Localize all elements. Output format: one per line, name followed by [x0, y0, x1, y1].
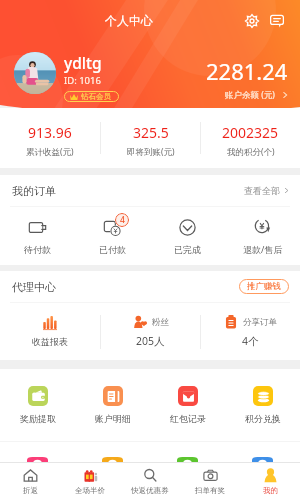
staticText: 即将到账(元)	[127, 146, 175, 158]
staticText: 折返	[23, 486, 38, 495]
button[interactable]: 推广赚钱	[247, 281, 281, 292]
staticText: 推广赚钱	[247, 281, 281, 292]
button[interactable]: 积分兑换	[225, 369, 300, 441]
button[interactable]: 4	[75, 207, 150, 265]
button[interactable]: More tools	[0, 442, 75, 464]
staticText: 扫单有奖	[195, 486, 225, 495]
staticText: 查看全部	[244, 185, 280, 196]
button[interactable]: 2281.24	[206, 56, 288, 101]
staticText: 代理中心	[12, 280, 56, 294]
button[interactable]: More tools	[150, 442, 225, 464]
button[interactable]: 我的	[240, 463, 300, 500]
staticText: 全场半价	[75, 486, 105, 495]
staticText: 2281.24	[206, 56, 288, 86]
staticText: ydltg	[64, 52, 102, 73]
button[interactable]: 913.96	[0, 108, 100, 168]
staticText: 分享订单	[243, 317, 277, 328]
button[interactable]: 待付款	[0, 207, 75, 265]
staticText: 913.96	[28, 123, 72, 142]
staticText: 收益报表	[32, 336, 68, 347]
staticText: 已付款	[99, 244, 126, 255]
staticText: 我的	[263, 486, 278, 495]
staticText: 4个	[242, 334, 259, 348]
staticText: 退款/售后	[243, 243, 283, 255]
staticText: 待付款	[24, 244, 51, 255]
button[interactable]: 奖励提取	[0, 369, 75, 441]
button[interactable]: Messages	[266, 10, 287, 31]
button[interactable]: 钻石会员	[70, 92, 111, 101]
button[interactable]: 查看全部	[244, 181, 289, 200]
button[interactable]: 红包记录	[150, 369, 225, 441]
button[interactable]: 账户明细	[75, 369, 150, 441]
staticText: 个人中心	[105, 13, 153, 28]
button[interactable]: More tools	[75, 442, 150, 464]
staticText: 钻石会员	[81, 92, 111, 101]
button[interactable]: 扫单有奖	[180, 463, 240, 500]
button[interactable]: Avatar	[14, 52, 56, 94]
staticText: ID: 1016	[64, 74, 101, 87]
staticText: 快返优惠券	[131, 486, 169, 495]
button[interactable]: 退款/售后	[225, 207, 300, 265]
button[interactable]: 2002325	[201, 108, 300, 168]
staticText: 4	[120, 214, 125, 226]
staticText: 325.5	[133, 123, 169, 142]
staticText: 已完成	[174, 244, 201, 255]
staticText: 累计收益(元)	[26, 146, 74, 158]
staticText: 粉丝	[152, 317, 169, 328]
button[interactable]: 全场半价	[60, 463, 120, 500]
button[interactable]: 分享订单	[201, 303, 300, 360]
button[interactable]: More tools	[225, 442, 300, 464]
staticText: 我的订单	[12, 184, 56, 198]
staticText: 账户余额 (元)	[225, 89, 275, 101]
staticText: 205人	[136, 334, 165, 348]
staticText: 2002325	[222, 123, 279, 142]
button[interactable]: 收益报表	[0, 303, 100, 360]
button[interactable]: 粉丝	[101, 303, 200, 360]
staticText: 红包记录	[170, 413, 206, 424]
button[interactable]: 325.5	[101, 108, 200, 168]
staticText: 积分兑换	[245, 413, 281, 424]
button[interactable]: 快返优惠券	[120, 463, 180, 500]
staticText: 奖励提取	[20, 413, 56, 424]
button[interactable]: 已完成	[150, 207, 225, 265]
staticText: 账户明细	[95, 413, 131, 424]
button[interactable]: 折返	[0, 463, 60, 500]
button[interactable]: Settings	[241, 10, 262, 31]
staticText: 我的积分(个)	[227, 146, 275, 158]
